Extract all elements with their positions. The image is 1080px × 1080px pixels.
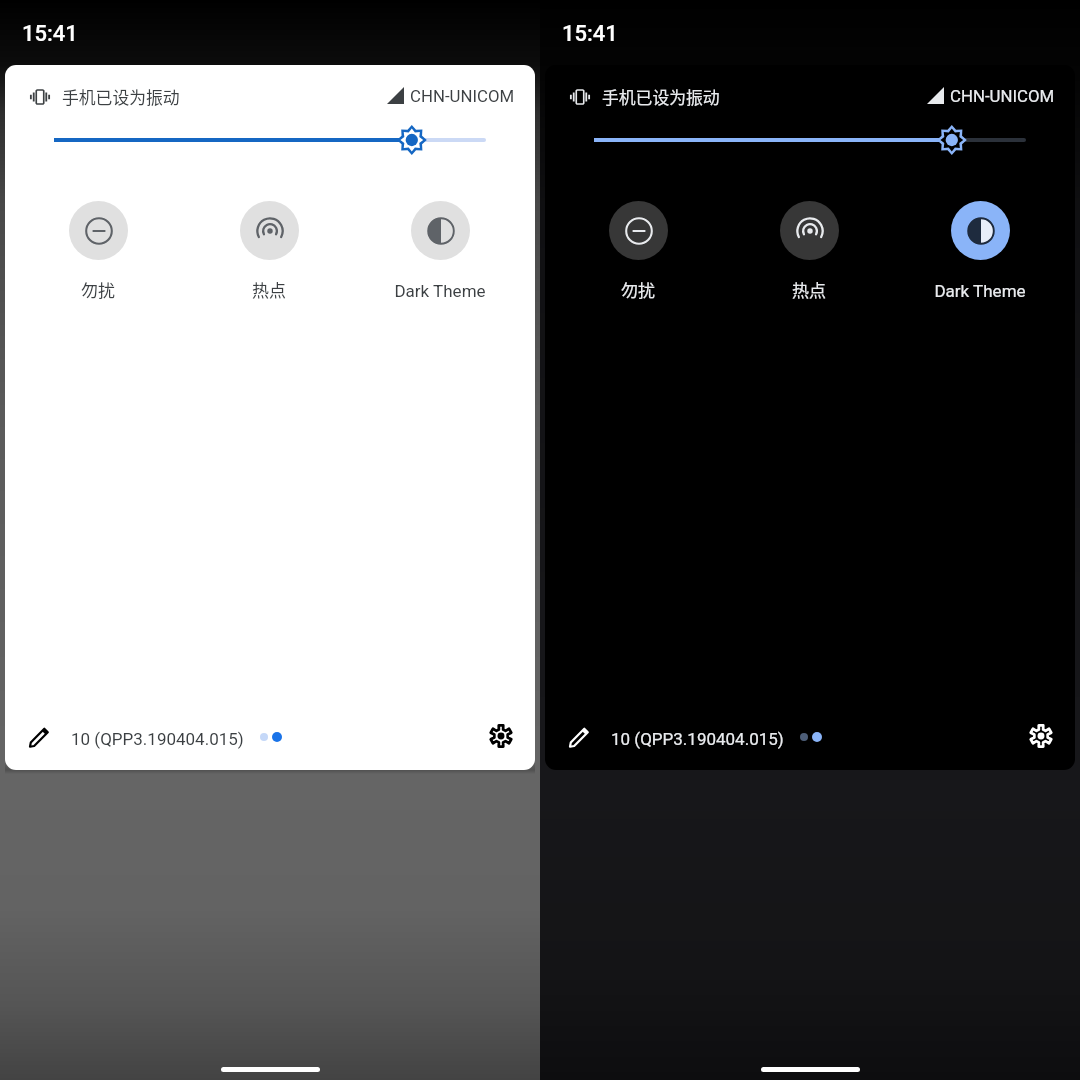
button[interactable]: 热点 [204,201,334,311]
button[interactable]: Dark Theme [375,201,505,311]
staticText: Dark Theme [375,281,505,301]
staticText: 勿扰 [33,277,163,302]
button[interactable]: Brightness [573,120,1037,160]
staticText: 15:41 [22,21,78,47]
staticText: 15:41 [562,21,618,47]
button[interactable]: Settings [489,724,513,748]
staticText: CHN-UNICOM [950,86,1055,106]
staticText: 热点 [204,277,334,302]
button[interactable]: Brightness [33,120,497,160]
staticText: CHN-UNICOM [410,86,515,106]
staticText: 手机已设为振动 [602,85,720,109]
staticText: 10 (QPP3.190404.015) [611,729,784,749]
staticText: 10 (QPP3.190404.015) [71,729,244,749]
button[interactable]: Edit tiles [567,724,593,750]
staticText: 热点 [744,277,874,302]
button[interactable]: 勿扰 [573,201,703,311]
button[interactable]: Settings [1029,724,1053,748]
button[interactable]: Dark Theme [915,201,1045,311]
staticText: 手机已设为振动 [62,85,180,109]
staticText: Dark Theme [915,281,1045,301]
button[interactable]: Edit tiles [27,724,53,750]
button[interactable]: 勿扰 [33,201,163,311]
button[interactable]: 热点 [744,201,874,311]
staticText: 勿扰 [573,277,703,302]
